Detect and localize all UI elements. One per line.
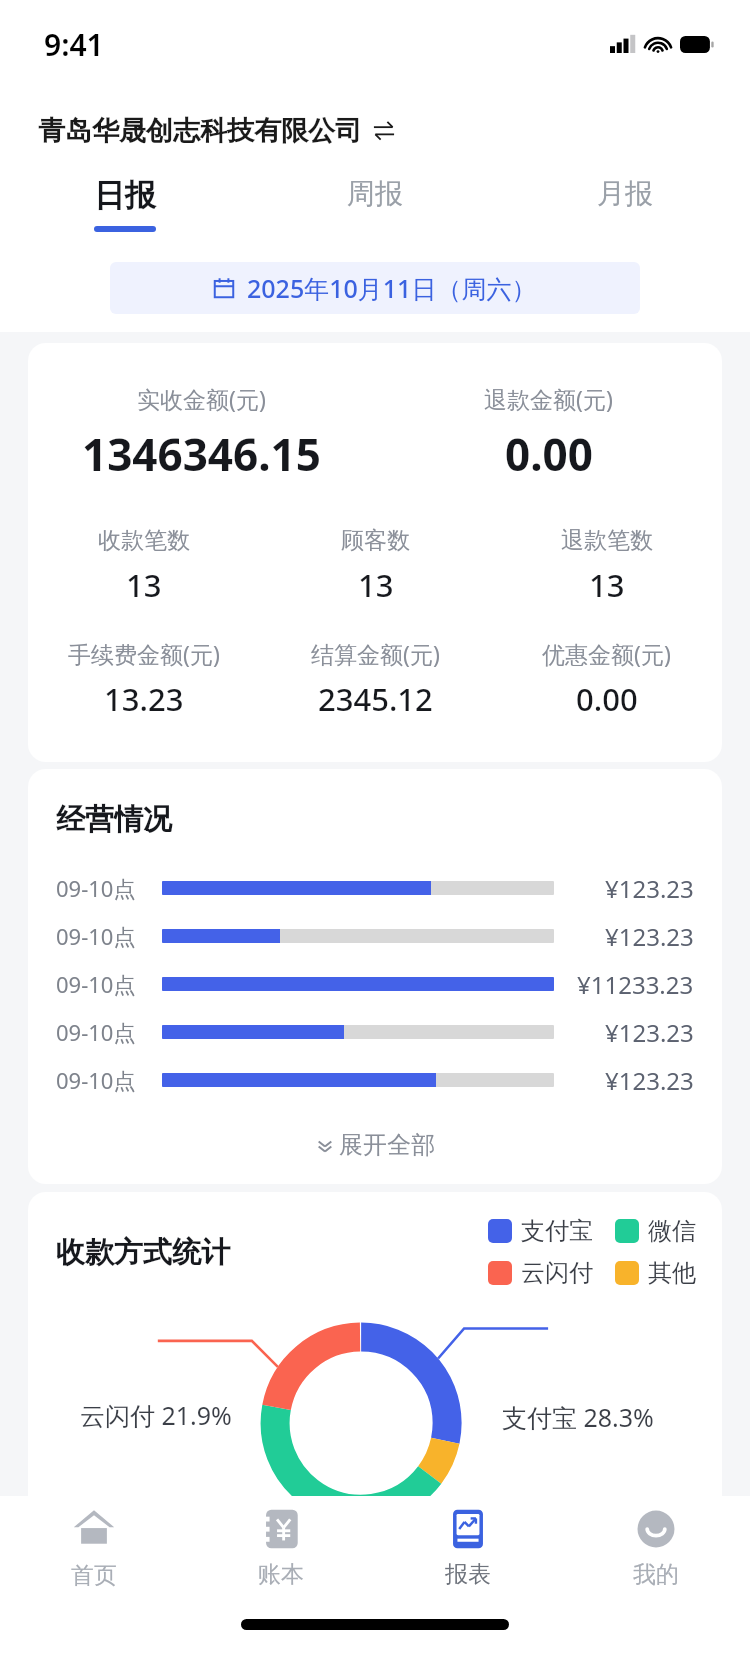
staticText: 09-10点 (56, 969, 162, 999)
other: 账本 (259, 1507, 303, 1551)
button[interactable]: 微信 (615, 1216, 696, 1246)
staticText: 我的 (633, 1560, 679, 1589)
staticText: 09-10点 (56, 873, 162, 903)
staticText: 9:41 (44, 24, 104, 65)
button[interactable]: 周报 (250, 176, 500, 228)
staticText: 13.23 (104, 678, 184, 720)
staticText: 收款笔数 (98, 526, 190, 555)
staticText: 13 (126, 564, 162, 606)
staticText: 2345.12 (318, 678, 433, 720)
staticText: 账本 (258, 1560, 304, 1589)
staticText: 支付宝 (521, 1216, 593, 1246)
button[interactable]: 首页 (0, 1496, 187, 1600)
staticText: 0.00 (576, 678, 638, 720)
staticText: 13 (589, 564, 625, 606)
staticText: 2025年10月11日（周六） (247, 271, 537, 305)
staticText: 0.00 (505, 424, 593, 484)
button[interactable]: 青岛华晟创志科技有限公司 (38, 114, 396, 148)
other: 切换店铺 (372, 119, 396, 143)
staticText: 09-10点 (56, 1065, 162, 1095)
staticText: 首页 (71, 1561, 117, 1590)
button[interactable]: 展开全部 (28, 1118, 722, 1172)
staticText: 云闪付 (521, 1258, 593, 1288)
button[interactable]: 云闪付 (488, 1258, 593, 1288)
button[interactable]: 其他 (615, 1258, 696, 1288)
staticText: 支付宝 28.3% (502, 1400, 654, 1434)
button[interactable]: 日报 (0, 176, 250, 232)
staticText: 经营情况 (56, 801, 172, 838)
staticText: 09-10点 (56, 921, 162, 951)
staticText: ¥123.23 (605, 920, 694, 953)
staticText: ¥11233.23 (577, 968, 694, 1001)
staticText: 手续费金额(元) (68, 638, 220, 669)
button[interactable]: 2025年10月11日（周六） (110, 262, 640, 314)
staticText: 月报 (597, 176, 653, 211)
button[interactable]: 报表 (374, 1496, 562, 1600)
other: 报表 (446, 1507, 490, 1551)
staticText: 实收金额(元) (137, 383, 266, 414)
staticText: ¥123.23 (605, 1064, 694, 1097)
staticText: 其他 (648, 1258, 696, 1288)
staticText: 顾客数 (341, 526, 410, 555)
button[interactable]: 月报 (500, 176, 750, 228)
staticText: 1346346.15 (82, 424, 321, 484)
staticText: 13 (358, 564, 394, 606)
staticText: 青岛华晟创志科技有限公司 (38, 114, 362, 148)
staticText: 云闪付 21.9% (80, 1398, 232, 1432)
button[interactable]: 账本 (187, 1496, 374, 1600)
staticText: 09-10点 (56, 1017, 162, 1047)
staticText: 收款方式统计 (56, 1234, 230, 1271)
button[interactable]: 我的 (562, 1496, 750, 1600)
button[interactable]: 支付宝 (488, 1216, 593, 1246)
staticText: 展开全部 (339, 1130, 435, 1160)
staticText: 退款金额(元) (484, 383, 613, 414)
staticText: 优惠金额(元) (542, 638, 671, 669)
staticText: ¥123.23 (605, 872, 694, 905)
staticText: 日报 (94, 176, 156, 215)
staticText: 结算金额(元) (311, 638, 440, 669)
staticText: ¥123.23 (605, 1016, 694, 1049)
button[interactable]: 实收金额(元) (28, 343, 722, 762)
staticText: 微信 (648, 1216, 696, 1246)
staticText: 报表 (445, 1560, 491, 1589)
staticText: 周报 (347, 176, 403, 211)
other: 首页 (71, 1506, 117, 1552)
other: 我的 (634, 1507, 678, 1551)
staticText: 退款笔数 (561, 526, 653, 555)
